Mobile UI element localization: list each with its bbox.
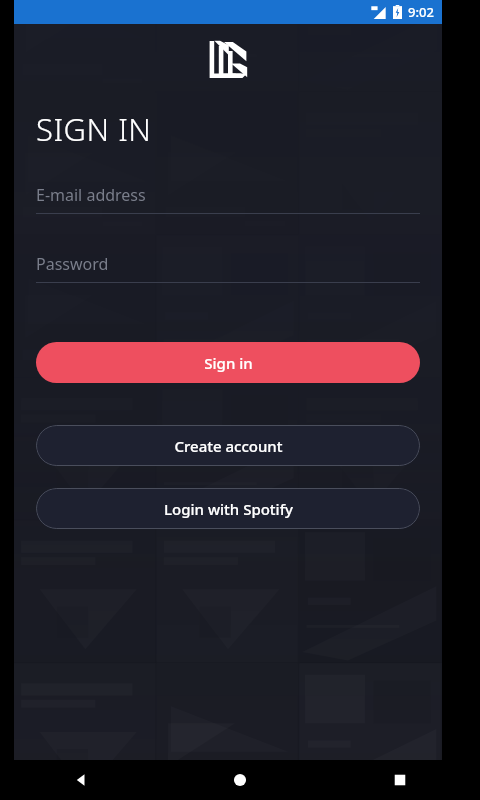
staticText: Sign in [204, 353, 253, 373]
staticText: Login with Spotify [164, 499, 293, 519]
staticText: Create account [174, 436, 283, 456]
staticText: 9:02 [408, 3, 434, 21]
other: Revealed logo [208, 40, 248, 78]
button[interactable]: Sign in [36, 342, 420, 383]
button[interactable]: E-mail address [36, 184, 420, 214]
button[interactable]: Login with Spotify [36, 488, 420, 529]
button[interactable]: Home [160, 760, 320, 800]
staticText: Password [36, 253, 109, 275]
staticText: SIGN IN [36, 108, 152, 150]
button[interactable]: Back [0, 760, 160, 800]
button[interactable]: Password [36, 253, 420, 283]
button[interactable]: Create account [36, 425, 420, 466]
button[interactable]: Recent apps [320, 760, 480, 800]
staticText: E-mail address [36, 184, 146, 206]
